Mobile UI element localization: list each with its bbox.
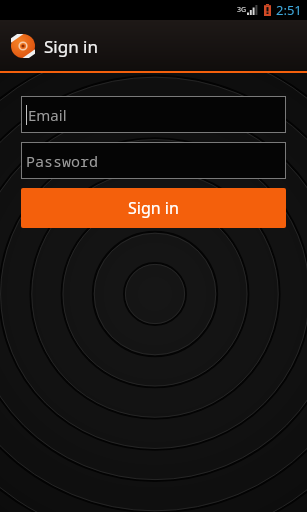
staticText: 3G [237, 5, 247, 15]
button[interactable]: Password [21, 142, 286, 179]
staticText: Password [26, 151, 99, 171]
staticText: Email [28, 105, 67, 125]
other: Logo [11, 34, 35, 58]
button[interactable]: Sign in [21, 188, 286, 228]
button[interactable]: Email [21, 96, 286, 133]
button[interactable]: App logo [11, 34, 98, 58]
staticText: Sign in [128, 197, 179, 219]
staticText: Sign in [44, 35, 98, 58]
staticText: 2:51 [276, 1, 302, 19]
